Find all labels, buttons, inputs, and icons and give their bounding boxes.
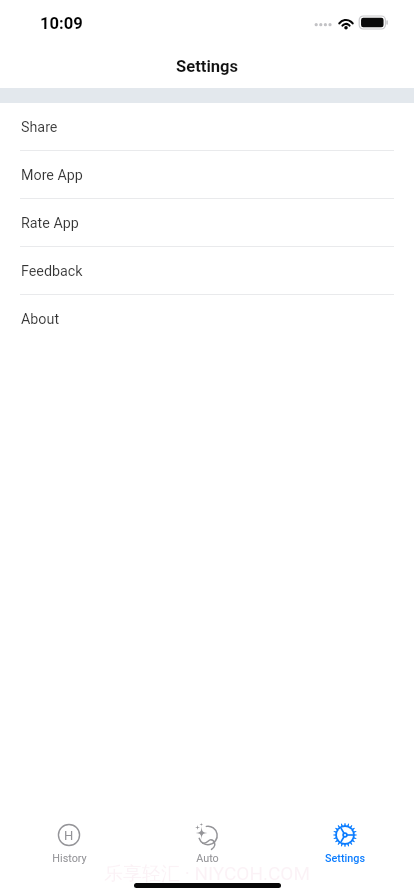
button[interactable]: More App — [0, 151, 414, 199]
staticText: Feedback — [21, 263, 83, 280]
button[interactable]: Settings — [276, 821, 414, 875]
button[interactable]: Share — [0, 103, 414, 151]
button[interactable]: Feedback — [0, 247, 414, 295]
staticText: H — [64, 828, 74, 843]
staticText: Settings — [176, 57, 239, 76]
button[interactable]: History — [0, 821, 138, 875]
staticText: History — [52, 852, 87, 865]
staticText: Share — [21, 119, 58, 136]
staticText: Auto — [196, 852, 219, 865]
staticText: More App — [21, 167, 83, 184]
staticText: 10:09 — [40, 14, 83, 33]
button[interactable]: Auto — [138, 821, 276, 875]
staticText: 乐享轻汇 · NIYCOH.COM — [104, 862, 311, 886]
staticText: About — [21, 311, 60, 328]
button[interactable]: Rate App — [0, 199, 414, 247]
staticText: Settings — [325, 852, 365, 865]
button[interactable]: About — [0, 295, 414, 343]
staticText: Rate App — [21, 215, 79, 232]
